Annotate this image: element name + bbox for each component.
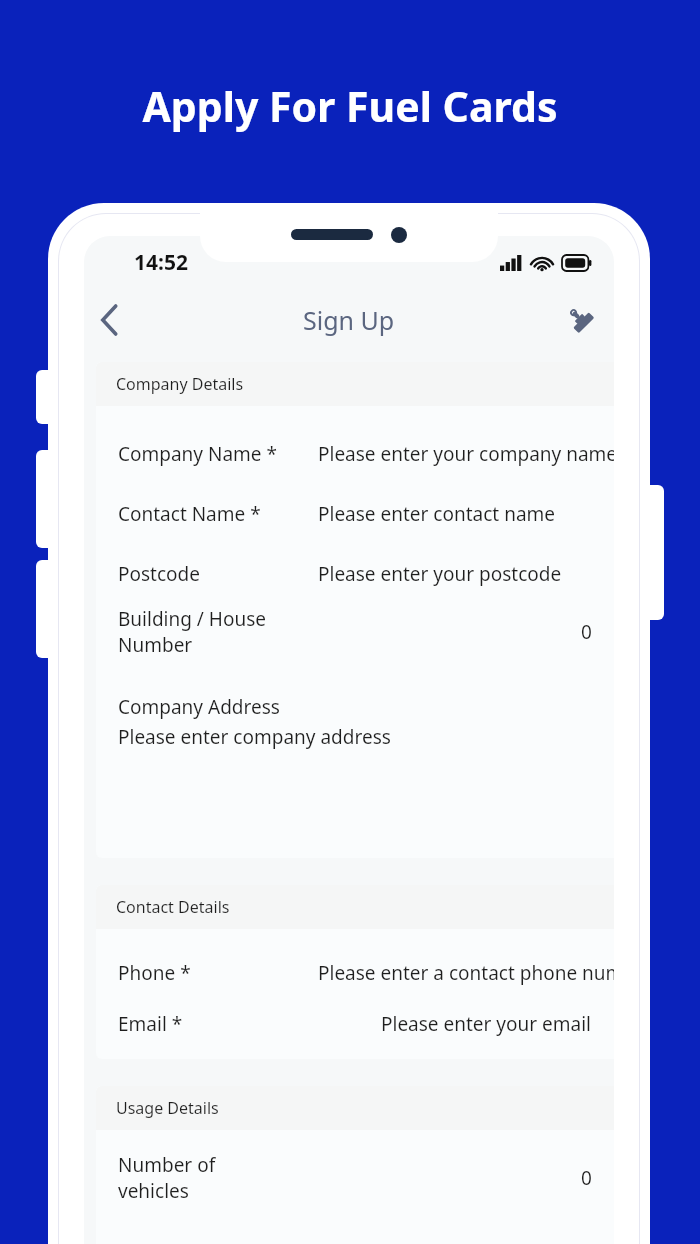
staticText: Please enter company address	[118, 724, 391, 750]
button[interactable]: Building / House Number	[96, 606, 614, 658]
staticText: 0	[581, 1165, 592, 1191]
button[interactable]: Company Address	[96, 694, 614, 750]
staticText: Email *	[118, 1011, 183, 1037]
staticText: Contact Details	[116, 896, 230, 918]
staticText: Company Name *	[118, 441, 277, 467]
staticText: Please enter your email	[381, 1011, 592, 1037]
button[interactable]: Email *	[96, 1011, 614, 1037]
button[interactable]: Number of vehicles	[96, 1152, 614, 1204]
button[interactable]: Theme	[556, 295, 606, 345]
staticText: Phone *	[118, 960, 191, 986]
button[interactable]: Company Name *	[96, 432, 614, 476]
button[interactable]: Contact Name *	[96, 492, 614, 536]
button[interactable]: Back	[84, 294, 136, 346]
staticText: 0	[581, 619, 592, 645]
button[interactable]: Postcode	[96, 552, 614, 596]
staticText: Number of vehicles	[118, 1152, 581, 1204]
button[interactable]: Phone *	[96, 951, 614, 995]
staticText: Please enter your company name	[318, 441, 614, 467]
staticText: Please enter your postcode	[318, 561, 562, 587]
staticText: Building / House Number	[118, 606, 581, 658]
staticText: Postcode	[118, 561, 200, 587]
staticText: Contact Name *	[118, 501, 261, 527]
staticText: Sign Up	[303, 303, 395, 337]
staticText: Company Details	[116, 373, 244, 395]
staticText: Company Address	[118, 694, 280, 720]
staticText: 14:52	[134, 248, 188, 277]
staticText: Please enter contact name	[318, 501, 556, 527]
staticText: Usage Details	[116, 1097, 219, 1119]
staticText: Apply For Fuel Cards	[0, 78, 700, 134]
staticText: Please enter a contact phone number	[318, 960, 614, 986]
